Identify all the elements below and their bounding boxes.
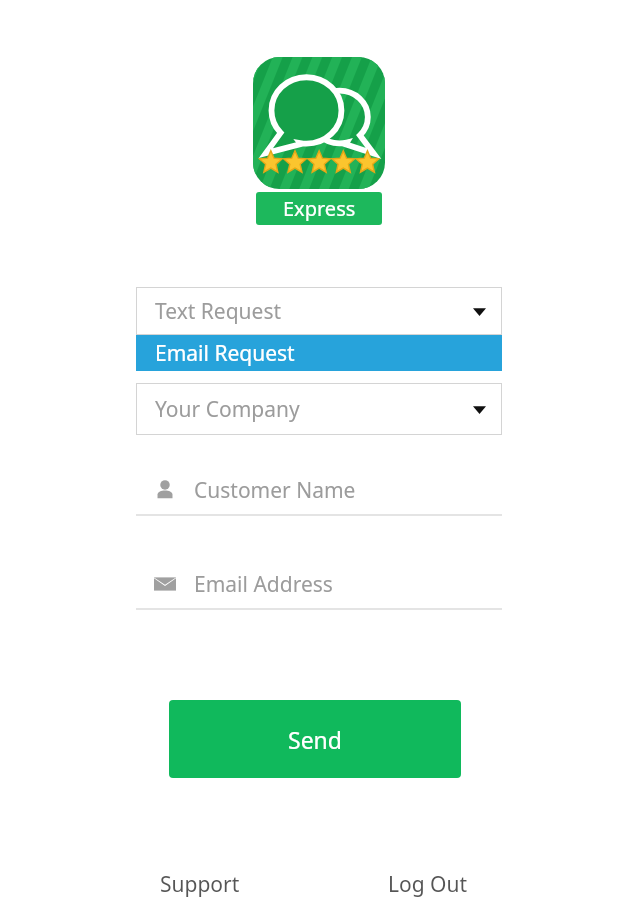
staticText: Log Out	[388, 870, 468, 899]
other: Express app logo	[253, 57, 385, 189]
button[interactable]: Express	[256, 192, 382, 225]
staticText: Your Company	[155, 395, 300, 424]
button[interactable]: Send	[169, 700, 461, 778]
staticText: Email Address	[194, 570, 333, 599]
staticText: Send	[288, 724, 342, 755]
staticText: Customer Name	[194, 476, 356, 505]
button[interactable]: Your Company	[136, 383, 502, 435]
button[interactable]: Log Out	[368, 862, 488, 906]
staticText: Support	[160, 870, 240, 899]
staticText: Email Request	[155, 339, 295, 368]
staticText: Express	[283, 195, 356, 222]
button[interactable]: Email Request	[136, 335, 502, 371]
button[interactable]: Support	[140, 862, 260, 906]
button[interactable]: Customer Name	[136, 466, 502, 516]
staticText: Text Request	[155, 297, 282, 326]
button[interactable]: Text Request	[136, 287, 502, 335]
button[interactable]: Email Address	[136, 560, 502, 610]
